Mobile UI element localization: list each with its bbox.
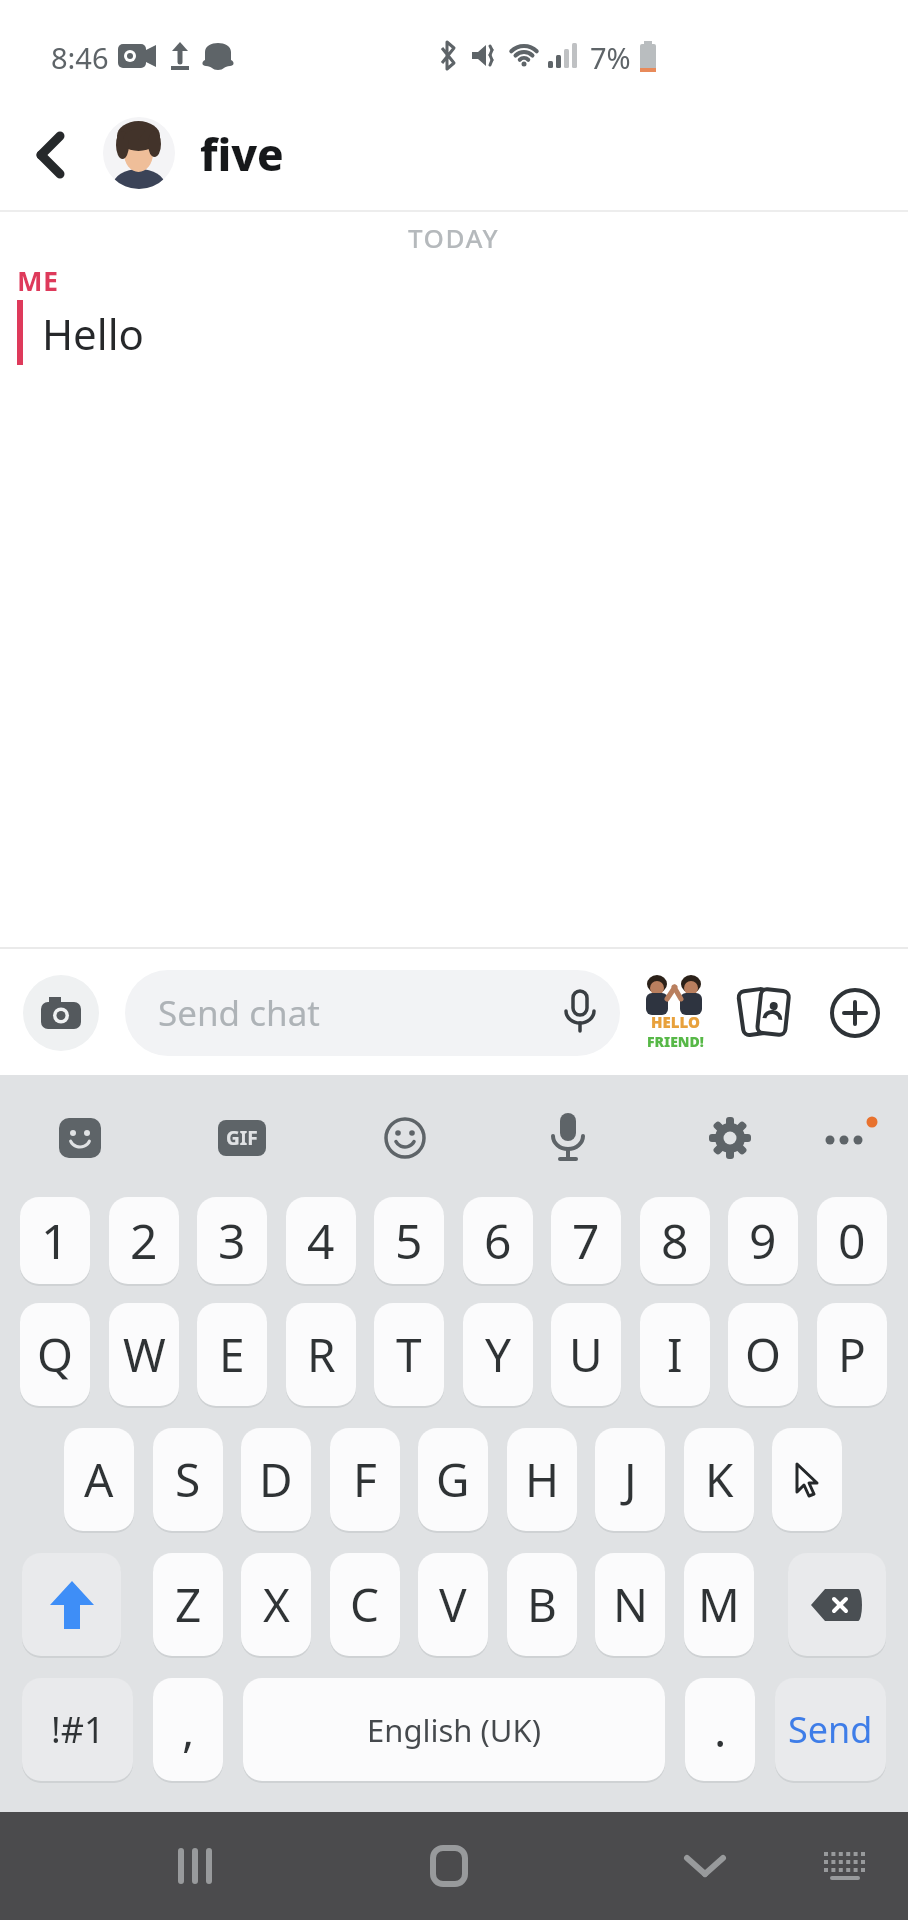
button[interactable]: U bbox=[551, 1303, 621, 1406]
button[interactable]: 2 bbox=[109, 1197, 179, 1284]
button[interactable]: I bbox=[640, 1303, 710, 1406]
staticText: Q bbox=[37, 1323, 73, 1386]
staticText: F bbox=[353, 1448, 377, 1511]
button[interactable] bbox=[820, 1110, 884, 1166]
button[interactable]: 5 bbox=[374, 1197, 444, 1284]
button[interactable] bbox=[56, 1113, 106, 1163]
button[interactable] bbox=[382, 1115, 428, 1161]
button[interactable]: GIF bbox=[218, 1120, 266, 1156]
button[interactable] bbox=[815, 1838, 875, 1894]
staticText: M bbox=[698, 1573, 740, 1636]
button[interactable]: R bbox=[286, 1303, 356, 1406]
button[interactable]: C bbox=[330, 1553, 400, 1656]
staticText: , bbox=[182, 1698, 195, 1761]
button[interactable]: B bbox=[507, 1553, 577, 1656]
button[interactable]: P bbox=[817, 1303, 887, 1406]
button[interactable] bbox=[829, 987, 881, 1039]
button[interactable]: N bbox=[595, 1553, 665, 1656]
staticText: Z bbox=[175, 1573, 202, 1636]
staticText: five bbox=[200, 124, 284, 184]
staticText: HELLO bbox=[651, 1012, 700, 1032]
staticText: T bbox=[396, 1323, 422, 1386]
button[interactable]: X bbox=[241, 1553, 311, 1656]
staticText: C bbox=[350, 1573, 380, 1636]
button[interactable] bbox=[788, 1553, 886, 1656]
staticText: S bbox=[175, 1448, 201, 1511]
staticText: V bbox=[439, 1573, 467, 1636]
button[interactable] bbox=[733, 980, 797, 1046]
button[interactable]: . bbox=[685, 1678, 755, 1781]
button[interactable]: HELLO bbox=[641, 975, 709, 1051]
staticText: G bbox=[436, 1448, 470, 1511]
button[interactable]: English (UK) bbox=[243, 1678, 665, 1781]
button[interactable]: Send chat bbox=[125, 970, 620, 1056]
button[interactable]: , bbox=[153, 1678, 223, 1781]
button[interactable]: S bbox=[153, 1428, 223, 1531]
staticText: 7% bbox=[590, 38, 631, 76]
button[interactable]: Send bbox=[775, 1678, 886, 1781]
staticText: 2 bbox=[130, 1208, 158, 1273]
staticText: K bbox=[705, 1448, 734, 1511]
staticText: J bbox=[624, 1448, 637, 1511]
button[interactable]: E bbox=[197, 1303, 267, 1406]
button[interactable]: J bbox=[595, 1428, 665, 1531]
staticText: R bbox=[307, 1323, 336, 1386]
button[interactable]: 6 bbox=[463, 1197, 533, 1284]
staticText: !#1 bbox=[51, 1705, 105, 1754]
staticText: O bbox=[745, 1323, 781, 1386]
button[interactable]: W bbox=[109, 1303, 179, 1406]
button[interactable] bbox=[772, 1428, 842, 1531]
staticText: Y bbox=[485, 1323, 512, 1386]
button[interactable]: 0 bbox=[817, 1197, 887, 1284]
staticText: 8:46 bbox=[51, 38, 109, 74]
button[interactable]: Z bbox=[153, 1553, 223, 1656]
staticText: D bbox=[259, 1448, 293, 1511]
button[interactable]: 3 bbox=[197, 1197, 267, 1284]
button[interactable] bbox=[548, 1111, 588, 1165]
button[interactable]: 9 bbox=[728, 1197, 798, 1284]
button[interactable] bbox=[22, 120, 86, 186]
staticText: P bbox=[838, 1323, 866, 1386]
button[interactable]: 1 bbox=[20, 1197, 90, 1284]
button[interactable] bbox=[163, 1834, 227, 1898]
staticText: 9 bbox=[749, 1208, 777, 1273]
button[interactable]: K bbox=[684, 1428, 754, 1531]
staticText: 1 bbox=[41, 1208, 69, 1273]
staticText: B bbox=[527, 1573, 557, 1636]
button[interactable]: 8 bbox=[640, 1197, 710, 1284]
staticText: N bbox=[613, 1573, 648, 1636]
button[interactable]: 4 bbox=[286, 1197, 356, 1284]
staticText: . bbox=[714, 1698, 727, 1761]
button[interactable]: A bbox=[64, 1428, 134, 1531]
staticText: English (UK) bbox=[367, 1709, 541, 1751]
button[interactable]: F bbox=[330, 1428, 400, 1531]
staticText: TODAY bbox=[408, 220, 500, 254]
staticText: 5 bbox=[395, 1208, 423, 1273]
staticText: 0 bbox=[838, 1208, 866, 1273]
button[interactable] bbox=[417, 1834, 481, 1898]
staticText: E bbox=[219, 1323, 245, 1386]
button[interactable]: Y bbox=[463, 1303, 533, 1406]
button[interactable] bbox=[706, 1114, 754, 1162]
staticText: H bbox=[525, 1448, 560, 1511]
button[interactable] bbox=[23, 975, 99, 1051]
button[interactable]: O bbox=[728, 1303, 798, 1406]
button[interactable]: M bbox=[684, 1553, 754, 1656]
staticText: FRIEND! bbox=[647, 1032, 704, 1051]
button[interactable]: D bbox=[241, 1428, 311, 1531]
button[interactable]: 7 bbox=[551, 1197, 621, 1284]
button[interactable]: H bbox=[507, 1428, 577, 1531]
button[interactable] bbox=[103, 117, 175, 189]
staticText: A bbox=[84, 1448, 114, 1511]
button[interactable]: V bbox=[418, 1553, 488, 1656]
button[interactable]: G bbox=[418, 1428, 488, 1531]
button[interactable] bbox=[673, 1834, 737, 1898]
staticText: Send bbox=[788, 1705, 873, 1754]
staticText: X bbox=[263, 1573, 290, 1636]
button[interactable]: !#1 bbox=[22, 1678, 133, 1781]
button[interactable]: Q bbox=[20, 1303, 90, 1406]
staticText: 7 bbox=[572, 1208, 600, 1273]
staticText: I bbox=[667, 1323, 683, 1386]
button[interactable]: T bbox=[374, 1303, 444, 1406]
button[interactable] bbox=[22, 1553, 121, 1656]
